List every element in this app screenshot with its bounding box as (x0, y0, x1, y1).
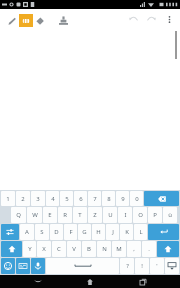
button[interactable]: Shift (1, 241, 22, 257)
button[interactable]: Keyboard settings (1, 224, 19, 240)
button[interactable]: Q (11, 207, 26, 223)
button[interactable]: 5 (60, 191, 73, 206)
button[interactable]: Space (46, 258, 119, 274)
staticText: 4 (51, 195, 55, 203)
button[interactable]: Hide keyboard (165, 258, 179, 274)
button[interactable]: C (52, 241, 66, 257)
staticText: E (48, 211, 52, 219)
staticText: T (78, 211, 82, 219)
button[interactable]: , (127, 241, 141, 257)
button[interactable]: B (82, 241, 96, 257)
button[interactable]: Home (75, 275, 105, 288)
staticText: O (138, 211, 143, 219)
staticText: ! (141, 262, 143, 270)
button[interactable]: Pen (5, 14, 19, 27)
staticText: 0 (135, 195, 139, 203)
button[interactable]: Stamp (56, 13, 70, 27)
button[interactable]: . (142, 241, 156, 257)
staticText: 2 (21, 195, 25, 203)
staticText: K (125, 228, 129, 236)
button[interactable]: Enter (148, 224, 179, 240)
staticText: I (124, 211, 127, 219)
button[interactable]: Redo (145, 13, 158, 26)
button[interactable]: Y (23, 241, 36, 257)
staticText: X (42, 245, 46, 253)
staticText: M (116, 245, 122, 253)
button[interactable]: N (97, 241, 111, 257)
staticText: G (82, 228, 87, 236)
staticText: D (54, 228, 59, 236)
button[interactable]: 9 (116, 191, 129, 206)
button[interactable]: D (50, 224, 63, 240)
button[interactable]: I (118, 207, 132, 223)
staticText: F (69, 228, 73, 236)
button[interactable]: F (64, 224, 77, 240)
button[interactable]: V (67, 241, 81, 257)
staticText: Q (16, 211, 21, 219)
button[interactable]: Voice input (31, 258, 45, 274)
button[interactable]: Eraser (33, 14, 47, 27)
staticText: 9 (121, 195, 125, 203)
staticText: , (133, 245, 135, 253)
button[interactable]: W (27, 207, 42, 223)
staticText: 1 (6, 195, 10, 203)
button[interactable]: 7 (88, 191, 101, 206)
button[interactable]: M (112, 241, 126, 257)
button[interactable]: K (120, 224, 133, 240)
button[interactable]: X (37, 241, 51, 257)
staticText: ü (168, 211, 172, 219)
staticText: N (102, 245, 107, 253)
staticText: L (139, 228, 143, 236)
button[interactable]: ! (135, 258, 149, 274)
button[interactable]: 1 (1, 191, 15, 206)
staticText: . (148, 245, 150, 253)
staticText: ? (126, 262, 129, 270)
button[interactable]: Z (88, 207, 102, 223)
button[interactable]: 4 (46, 191, 59, 206)
button[interactable]: Symbols (16, 258, 30, 274)
staticText: B (87, 245, 91, 253)
staticText: Z (93, 211, 97, 219)
staticText: J (112, 228, 114, 236)
button[interactable]: 2 (16, 191, 30, 206)
button[interactable]: ? (120, 258, 134, 274)
button[interactable]: Marker (19, 14, 33, 27)
button[interactable]: Back (23, 275, 53, 288)
button[interactable]: R (58, 207, 72, 223)
button[interactable]: H (92, 224, 105, 240)
button[interactable]: Shift (157, 241, 179, 257)
staticText: 6 (79, 195, 83, 203)
staticText: 8 (107, 195, 111, 203)
button[interactable]: More options (163, 13, 176, 26)
button[interactable]: U (103, 207, 117, 223)
staticText: Y (28, 245, 32, 253)
button[interactable]: Recent apps (128, 275, 158, 288)
button[interactable]: E (43, 207, 57, 223)
button[interactable]: ' (150, 258, 164, 274)
staticText: U (108, 211, 113, 219)
button[interactable]: S (35, 224, 49, 240)
staticText: 7 (93, 195, 97, 203)
button[interactable]: Undo (127, 13, 140, 26)
button[interactable]: J (106, 224, 119, 240)
staticText: S (40, 228, 44, 236)
button[interactable]: P (148, 207, 162, 223)
button[interactable]: O (133, 207, 147, 223)
staticText: ' (156, 262, 158, 270)
button[interactable]: 6 (74, 191, 87, 206)
staticText: H (96, 228, 101, 236)
button[interactable]: A (20, 224, 34, 240)
button[interactable]: 3 (31, 191, 45, 206)
button[interactable]: T (73, 207, 87, 223)
button[interactable]: ü (163, 207, 177, 223)
button[interactable]: 8 (102, 191, 115, 206)
button[interactable]: Emoji (1, 258, 15, 274)
button[interactable]: L (134, 224, 147, 240)
button[interactable]: G (78, 224, 91, 240)
staticText: 3 (36, 195, 40, 203)
button[interactable]: 0 (130, 191, 143, 206)
staticText: V (72, 245, 76, 253)
button[interactable]: Backspace (144, 191, 179, 206)
staticText: R (63, 211, 67, 219)
staticText: W (32, 211, 38, 219)
